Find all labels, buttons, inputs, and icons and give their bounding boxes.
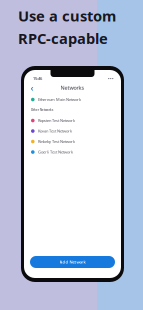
button[interactable]: Ropsten Test Network [24, 115, 121, 126]
staticText: ••• [108, 76, 114, 81]
staticText: Kovan Test Network [38, 128, 72, 134]
staticText: 15:46 [33, 76, 42, 81]
staticText: Goerli Test Network [38, 149, 73, 155]
staticText: Add Network [59, 259, 85, 265]
button[interactable]: Ethereum Main Network [24, 94, 121, 105]
staticText: Rinkeby Test Network [38, 139, 75, 144]
staticText: RPC-capable [18, 28, 108, 48]
staticText: Use a custom [18, 6, 116, 25]
staticText: Ethereum Main Network [38, 97, 81, 102]
staticText: Other Networks [31, 108, 53, 112]
button[interactable]: Kovan Test Network [24, 126, 121, 136]
staticText: Ropsten Test Network [38, 118, 75, 123]
button[interactable]: Back [27, 83, 37, 93]
button[interactable]: Goerli Test Network [24, 147, 121, 157]
staticText: ‹ [30, 81, 33, 94]
button[interactable]: Rinkeby Test Network [24, 136, 121, 147]
button[interactable]: Add Network [30, 256, 115, 268]
staticText: Networks [60, 84, 84, 91]
